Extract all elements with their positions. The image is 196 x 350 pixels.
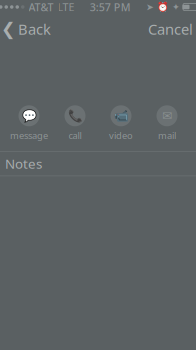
staticText: ✦	[172, 2, 180, 12]
staticText: 📹	[113, 109, 128, 123]
staticText: ✉	[162, 109, 172, 123]
button[interactable]: Cancel	[140, 14, 196, 44]
staticText: mail	[158, 129, 176, 142]
button[interactable]: ❮	[0, 14, 57, 44]
staticText: ❮	[1, 19, 16, 39]
staticText: AT&T	[28, 0, 53, 14]
staticText: ➤	[146, 2, 154, 12]
staticText: video	[109, 129, 133, 142]
staticText: 💬	[21, 109, 36, 123]
button[interactable]: 💬	[9, 105, 49, 142]
staticText: Cancel	[148, 19, 193, 39]
button[interactable]: ✉	[147, 105, 187, 142]
button[interactable]: 📞	[55, 105, 95, 142]
staticText: Back	[18, 19, 51, 39]
staticText: 📞	[67, 109, 82, 123]
staticText: call	[68, 129, 81, 142]
staticText: 3:57 PM	[90, 0, 131, 14]
button[interactable]: Notes	[0, 152, 196, 176]
staticText: Notes	[5, 155, 42, 172]
button[interactable]: 📹	[101, 105, 141, 142]
staticText: message	[10, 129, 48, 142]
staticText: LTE	[57, 0, 74, 14]
staticText: ⏰	[157, 2, 169, 12]
